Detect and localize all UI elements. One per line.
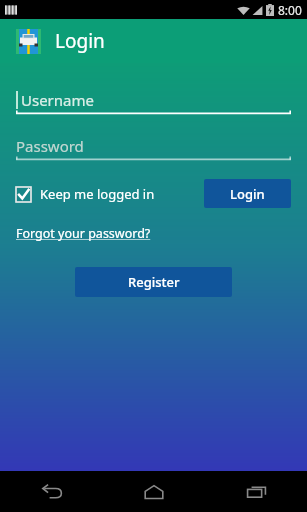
button[interactable]: Login (204, 179, 291, 208)
button[interactable]: Password (16, 131, 291, 161)
button[interactable]: Recent apps (205, 471, 307, 512)
staticText: Register (128, 273, 180, 291)
button[interactable]: Forgot your password? (16, 225, 151, 242)
button[interactable]: Home (103, 471, 205, 512)
staticText: Forgot your password? (16, 225, 151, 242)
button[interactable]: Username (16, 85, 291, 115)
staticText: Login (55, 28, 105, 54)
staticText: Username (21, 90, 94, 110)
staticText: Keep me logged in (40, 185, 155, 203)
button[interactable]: Register (75, 267, 232, 297)
other: App icon (16, 29, 41, 54)
staticText: Login (230, 185, 265, 203)
button[interactable]: Back (0, 471, 103, 512)
staticText: 8:00 (278, 2, 302, 18)
button[interactable]: Keep me logged in (16, 185, 155, 203)
staticText: Password (16, 136, 84, 156)
